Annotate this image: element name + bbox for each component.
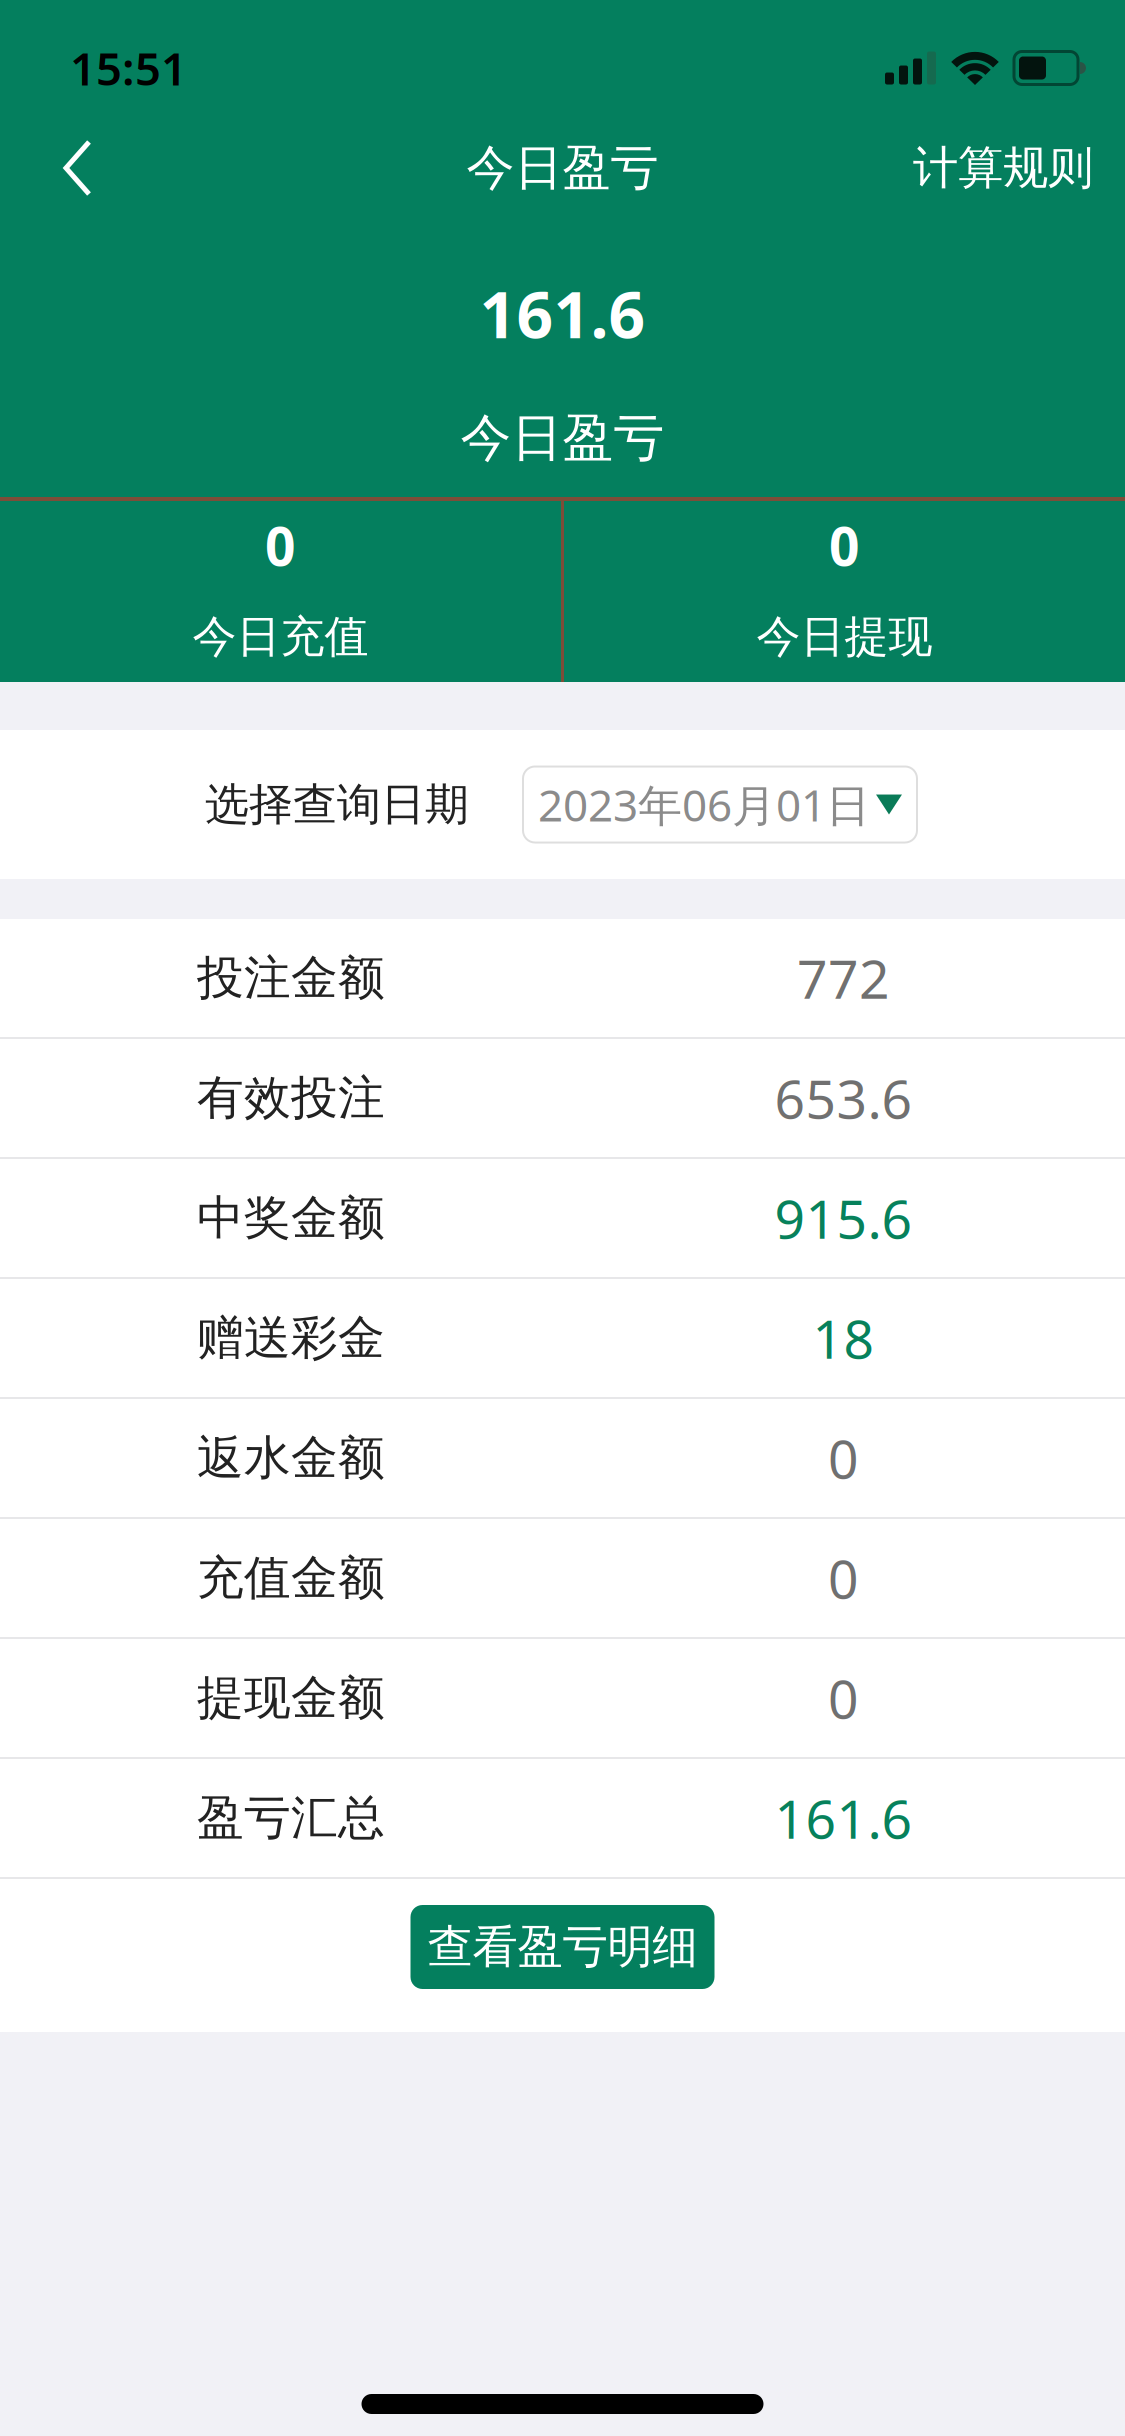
staticText: 今日充值: [192, 610, 368, 664]
staticText: 投注金额: [197, 949, 385, 1007]
staticText: 有效投注: [197, 1069, 385, 1127]
staticText: 计算规则: [913, 140, 1093, 196]
staticText: 0: [265, 510, 296, 581]
staticText: 返水金额: [197, 1429, 385, 1487]
staticText: 今日盈亏: [466, 138, 658, 197]
staticText: 915.6: [774, 1183, 912, 1253]
staticText: 提现金额: [197, 1669, 385, 1727]
button[interactable]: 返回: [0, 142, 119, 194]
staticText: 0: [828, 1663, 859, 1733]
staticText: 15:51: [70, 38, 187, 98]
staticText: 18: [812, 1303, 874, 1373]
staticText: 中奖金额: [197, 1189, 385, 1247]
staticText: 0: [829, 510, 860, 581]
button[interactable]: 查看盈亏明细: [410, 1905, 714, 1989]
staticText: 赠送彩金: [197, 1309, 385, 1367]
staticText: 选择查询日期: [205, 777, 469, 831]
staticText: 盈亏汇总: [197, 1789, 385, 1847]
staticText: 161.6: [774, 1783, 912, 1853]
staticText: 772: [797, 943, 890, 1013]
staticText: 今日盈亏: [460, 407, 664, 469]
staticText: 0: [828, 1423, 859, 1493]
staticText: 今日提现: [756, 610, 932, 664]
staticText: 充值金额: [197, 1549, 385, 1607]
staticText: 2023年06月01日: [538, 775, 870, 834]
button[interactable]: 计算规则: [913, 140, 1125, 196]
staticText: 0: [828, 1543, 859, 1613]
staticText: 653.6: [774, 1063, 912, 1133]
staticText: 161.6: [479, 271, 645, 356]
staticText: 查看盈亏明细: [427, 1919, 697, 1975]
button[interactable]: 2023年06月01日: [523, 766, 917, 842]
